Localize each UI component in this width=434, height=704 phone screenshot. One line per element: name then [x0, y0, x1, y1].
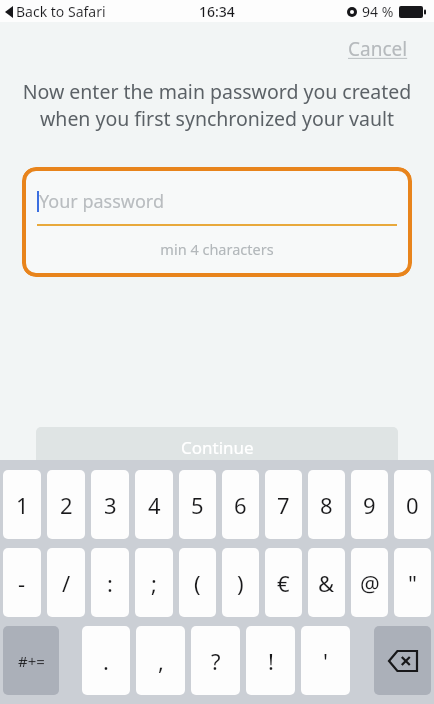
staticText: min 4 characters: [37, 239, 397, 259]
staticText: Your password: [39, 189, 165, 214]
staticText: .: [103, 646, 109, 676]
staticText: 6: [234, 490, 247, 520]
staticText: 0: [406, 490, 419, 520]
button[interactable]: 0: [394, 470, 431, 539]
button[interactable]: €: [265, 548, 302, 617]
staticText: :: [107, 568, 113, 598]
button[interactable]: 9: [351, 470, 388, 539]
button[interactable]: ,: [136, 626, 185, 695]
button[interactable]: 3: [91, 470, 129, 539]
staticText: &: [318, 568, 335, 598]
button[interactable]: 7: [265, 470, 302, 539]
staticText: 7: [277, 490, 290, 520]
button[interactable]: :: [91, 548, 129, 617]
staticText: ;: [151, 568, 157, 598]
staticText: ': [323, 646, 328, 676]
staticText: 4: [148, 490, 161, 520]
button[interactable]: /: [47, 548, 85, 617]
staticText: 2: [60, 490, 73, 520]
staticText: €: [277, 568, 290, 598]
button[interactable]: Cancel: [344, 34, 412, 64]
button[interactable]: Back to Safari: [5, 2, 106, 21]
staticText: Continue: [181, 436, 254, 459]
button[interactable]: 6: [222, 470, 259, 539]
button[interactable]: 8: [308, 470, 345, 539]
button[interactable]: ): [222, 548, 259, 617]
button[interactable]: 4: [135, 470, 173, 539]
staticText: 1: [16, 490, 29, 520]
button[interactable]: ": [394, 548, 431, 617]
staticText: Now enter the main password you created …: [22, 78, 412, 132]
staticText: (: [194, 568, 201, 598]
button[interactable]: .: [82, 626, 130, 695]
button[interactable]: &: [308, 548, 345, 617]
button[interactable]: ;: [135, 548, 173, 617]
staticText: 3: [104, 490, 117, 520]
button[interactable]: Your password: [22, 167, 412, 277]
staticText: /: [62, 568, 71, 598]
button[interactable]: -: [3, 548, 41, 617]
staticText: Cancel: [348, 36, 408, 62]
button[interactable]: !: [246, 626, 295, 695]
staticText: 9: [363, 490, 376, 520]
staticText: Back to Safari: [16, 2, 106, 21]
staticText: @: [360, 568, 380, 598]
staticText: 5: [191, 490, 204, 520]
button[interactable]: 2: [47, 470, 85, 539]
staticText: 16:34: [199, 2, 235, 21]
staticText: -: [18, 568, 26, 598]
staticText: ,: [158, 646, 164, 676]
button[interactable]: #+=: [3, 626, 59, 695]
button[interactable]: 1: [3, 470, 41, 539]
button[interactable]: Backspace: [374, 626, 431, 695]
button[interactable]: ?: [191, 626, 240, 695]
staticText: !: [268, 646, 274, 676]
staticText: ?: [211, 646, 221, 676]
staticText: ): [237, 568, 244, 598]
button[interactable]: @: [351, 548, 388, 617]
button[interactable]: Continue: [36, 427, 398, 467]
staticText: 94 %: [362, 2, 394, 21]
staticText: 8: [320, 490, 333, 520]
button[interactable]: 5: [179, 470, 216, 539]
staticText: ": [408, 568, 417, 598]
button[interactable]: ': [301, 626, 350, 695]
staticText: #+=: [18, 651, 45, 671]
button[interactable]: (: [179, 548, 216, 617]
